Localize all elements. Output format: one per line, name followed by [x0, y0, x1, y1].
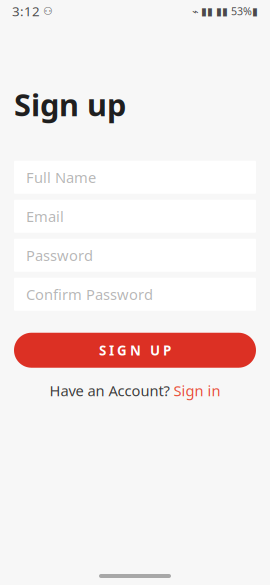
- staticText: Password: [26, 245, 93, 265]
- staticText: Confirm Password: [26, 284, 153, 304]
- staticText: Sign in: [173, 381, 220, 400]
- button[interactable]: Sign in: [173, 381, 220, 400]
- staticText: ⚇: [40, 5, 53, 17]
- staticText: S I G N U P: [99, 341, 171, 359]
- staticText: Sign up: [14, 84, 126, 125]
- staticText: ⌁ ▮▮ ▮▮ 53%▮: [192, 4, 258, 18]
- staticText: 3:12: [12, 2, 40, 20]
- staticText: Email: [26, 206, 64, 226]
- button[interactable]: S I G N U P: [14, 333, 256, 368]
- staticText: Have an Account?: [49, 381, 169, 400]
- staticText: Full Name: [26, 167, 96, 187]
